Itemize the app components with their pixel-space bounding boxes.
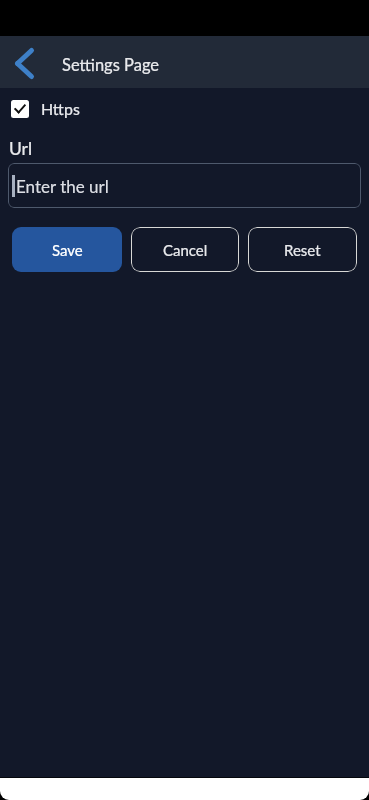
button[interactable]: Save <box>12 227 122 272</box>
button[interactable]: Enter the url <box>8 163 361 208</box>
staticText: Url <box>9 138 33 159</box>
button[interactable]: Cancel <box>131 227 239 272</box>
staticText: Https <box>41 99 80 118</box>
staticText: Enter the url <box>16 176 109 196</box>
button[interactable]: Reset <box>248 227 357 272</box>
staticText: Settings Page <box>62 55 160 75</box>
staticText: Reset <box>284 241 321 259</box>
button[interactable]: Back <box>0 38 48 86</box>
staticText: Cancel <box>163 241 208 259</box>
staticText: Save <box>52 241 83 259</box>
button[interactable]: Https checkbox <box>11 100 29 118</box>
